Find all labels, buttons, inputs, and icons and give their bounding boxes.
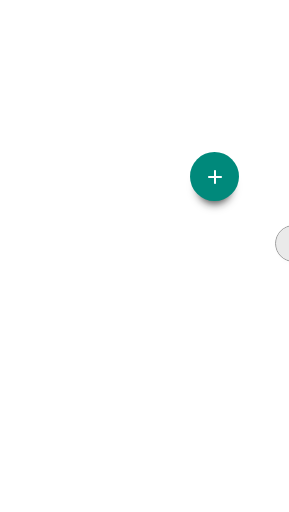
- button[interactable]: Add: [190, 152, 239, 201]
- button[interactable]: More options: [275, 225, 289, 262]
